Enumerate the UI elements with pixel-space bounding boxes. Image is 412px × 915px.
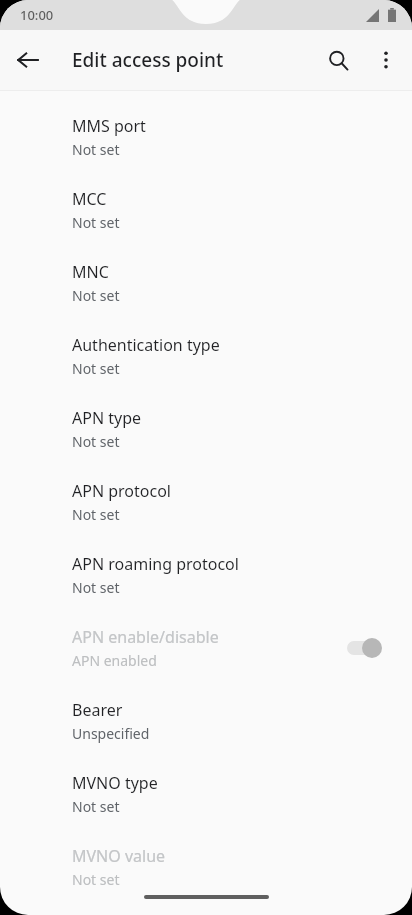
staticText: Not set [72, 505, 120, 524]
staticText: Not set [72, 432, 120, 451]
button[interactable]: More options [362, 36, 410, 84]
staticText: Not set [72, 870, 120, 889]
button[interactable]: MVNO value [0, 830, 412, 903]
staticText: APN type [72, 407, 142, 429]
button[interactable]: MNC [0, 246, 412, 319]
staticText: APN enable/disable [72, 626, 219, 648]
button[interactable]: MVNO type [0, 757, 412, 830]
button[interactable]: APN enable/disable [0, 611, 412, 684]
staticText: 10:00 [20, 6, 54, 24]
button[interactable]: Search [314, 36, 362, 84]
staticText: MVNO type [72, 772, 158, 794]
staticText: MCC [72, 188, 107, 210]
staticText: MVNO value [72, 845, 166, 867]
staticText: Not set [72, 140, 120, 159]
staticText: Bearer [72, 699, 123, 721]
staticText: APN roaming protocol [72, 553, 239, 575]
staticText: Unspecified [72, 724, 150, 743]
staticText: APN enabled [72, 651, 157, 670]
button[interactable]: Authentication type [0, 319, 412, 392]
staticText: APN protocol [72, 480, 171, 502]
button[interactable]: Back [4, 36, 52, 84]
staticText: Not set [72, 359, 120, 378]
staticText: Edit access point [72, 47, 224, 73]
staticText: Not set [72, 213, 120, 232]
staticText: Not set [72, 797, 120, 816]
staticText: Not set [72, 286, 120, 305]
staticText: MMS port [72, 115, 146, 137]
button[interactable]: APN protocol [0, 465, 412, 538]
button[interactable]: APN roaming protocol [0, 538, 412, 611]
button[interactable]: Bearer [0, 684, 412, 757]
button[interactable]: MCC [0, 173, 412, 246]
button[interactable]: APN enable/disable toggle [346, 628, 398, 668]
button[interactable]: MMS port [0, 100, 412, 173]
staticText: Authentication type [72, 334, 220, 356]
staticText: MNC [72, 261, 109, 283]
button[interactable]: APN type [0, 392, 412, 465]
staticText: Not set [72, 578, 120, 597]
